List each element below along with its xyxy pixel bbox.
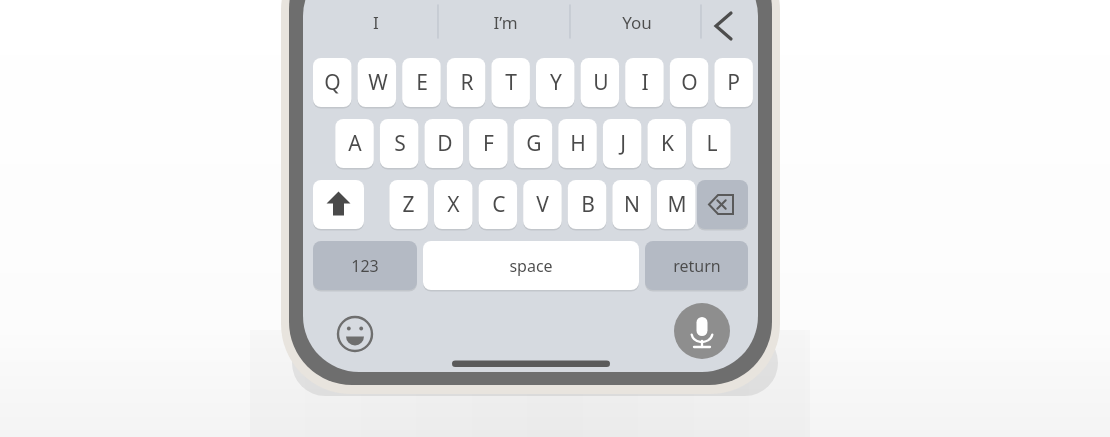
button[interactable]: D — [425, 119, 464, 168]
button[interactable]: A — [335, 119, 374, 168]
staticText: R — [460, 68, 474, 97]
staticText: Y — [550, 68, 562, 97]
button[interactable]: Dictation — [674, 303, 730, 359]
button[interactable]: S — [380, 119, 419, 168]
staticText: A — [348, 129, 362, 158]
button[interactable]: J — [603, 119, 642, 168]
staticText: I — [373, 11, 379, 34]
button[interactable]: R — [447, 58, 486, 107]
button[interactable]: Back — [701, 4, 748, 40]
button[interactable]: V — [523, 180, 562, 229]
staticText: space — [509, 255, 553, 277]
button[interactable]: L — [692, 119, 731, 168]
button[interactable]: 123 — [313, 241, 417, 290]
button[interactable]: I — [313, 4, 438, 40]
staticText: N — [624, 190, 640, 219]
staticText: Z — [402, 190, 415, 219]
button[interactable]: F — [469, 119, 508, 168]
staticText: 123 — [351, 255, 379, 277]
button[interactable]: Emoji — [336, 315, 374, 353]
staticText: F — [483, 129, 494, 158]
staticText: P — [727, 68, 740, 97]
button[interactable]: M — [657, 180, 696, 229]
staticText: You — [622, 11, 652, 34]
button[interactable]: B — [568, 180, 607, 229]
staticText: return — [673, 255, 721, 277]
button[interactable]: O — [670, 58, 709, 107]
staticText: H — [570, 129, 586, 158]
staticText: O — [681, 68, 698, 97]
staticText: E — [416, 68, 428, 97]
staticText: K — [661, 129, 674, 158]
button[interactable]: space — [423, 241, 639, 290]
button[interactable]: W — [358, 58, 397, 107]
staticText: M — [667, 190, 687, 219]
staticText: L — [706, 129, 718, 158]
button[interactable]: T — [491, 58, 530, 107]
button[interactable]: You — [572, 4, 701, 40]
staticText: G — [526, 129, 542, 158]
button[interactable]: I — [625, 58, 664, 107]
staticText: S — [394, 129, 406, 158]
button[interactable]: K — [648, 119, 687, 168]
button[interactable]: Backspace — [697, 180, 748, 229]
staticText: J — [620, 129, 626, 158]
staticText: I — [641, 68, 649, 97]
staticText: B — [581, 190, 595, 219]
staticText: U — [593, 68, 609, 97]
staticText: Q — [324, 68, 341, 97]
button[interactable]: G — [514, 119, 553, 168]
button[interactable]: P — [714, 58, 753, 107]
button[interactable]: X — [434, 180, 473, 229]
button[interactable]: Q — [313, 58, 352, 107]
button[interactable]: U — [581, 58, 620, 107]
button[interactable]: C — [479, 180, 518, 229]
staticText: I’m — [493, 11, 518, 34]
staticText: D — [437, 129, 453, 158]
staticText: X — [447, 190, 460, 219]
button[interactable]: return — [645, 241, 748, 290]
staticText: C — [492, 190, 506, 219]
staticText: T — [505, 68, 517, 97]
staticText: V — [536, 190, 549, 219]
button[interactable]: Z — [389, 180, 428, 229]
button[interactable]: Y — [536, 58, 575, 107]
button[interactable]: H — [558, 119, 597, 168]
button[interactable]: N — [612, 180, 651, 229]
staticText: W — [368, 68, 388, 97]
button[interactable]: Shift — [313, 180, 364, 229]
button[interactable]: I’m — [440, 4, 570, 40]
button[interactable]: E — [402, 58, 441, 107]
